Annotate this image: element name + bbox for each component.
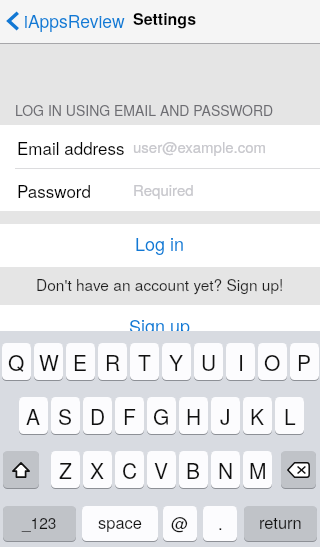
button[interactable]: Backspace: [281, 451, 316, 488]
button[interactable]: J: [211, 397, 240, 434]
staticText: T: [138, 347, 151, 377]
button[interactable]: return: [244, 506, 317, 541]
staticText: V: [154, 455, 169, 485]
staticText: Don't have an account yet? Sign up!: [36, 273, 284, 295]
staticText: J: [220, 401, 231, 431]
button[interactable]: G: [147, 397, 176, 434]
button[interactable]: Log in: [0, 224, 320, 267]
button[interactable]: H: [179, 397, 208, 434]
staticText: iAppsReview: [24, 8, 125, 33]
staticText: return: [259, 510, 302, 534]
button[interactable]: Email address: [0, 125, 320, 168]
button[interactable]: R: [98, 343, 127, 380]
staticText: Email address: [17, 135, 125, 159]
staticText: Log in: [135, 230, 185, 256]
staticText: C: [122, 455, 138, 485]
staticText: A: [26, 401, 41, 431]
button[interactable]: O: [258, 343, 287, 380]
button[interactable]: Q: [2, 343, 31, 380]
staticText: Z: [59, 455, 72, 485]
staticText: space: [98, 510, 143, 534]
staticText: M: [249, 455, 267, 485]
staticText: .: [218, 510, 223, 534]
staticText: S: [58, 401, 73, 431]
button[interactable]: space: [82, 506, 158, 541]
staticText: W: [39, 347, 59, 377]
staticText: I: [238, 347, 244, 377]
staticText: LOG IN USING EMAIL AND PASSWORD: [15, 100, 274, 120]
staticText: H: [186, 401, 202, 431]
button[interactable]: V: [147, 451, 176, 488]
button[interactable]: Z: [51, 451, 80, 488]
staticText: Password: [17, 178, 91, 202]
staticText: Required: [133, 179, 194, 200]
button[interactable]: U: [194, 343, 223, 380]
button[interactable]: T: [130, 343, 159, 380]
staticText: P: [297, 347, 312, 377]
staticText: @: [171, 510, 189, 534]
button[interactable]: L: [275, 397, 304, 434]
button[interactable]: Y: [162, 343, 191, 380]
staticText: N: [218, 455, 234, 485]
button[interactable]: Shift: [3, 451, 39, 488]
button[interactable]: W: [34, 343, 63, 380]
button[interactable]: F: [115, 397, 144, 434]
button[interactable]: D: [83, 397, 112, 434]
button[interactable]: Password: [0, 168, 320, 211]
button[interactable]: B: [179, 451, 208, 488]
button[interactable]: A: [19, 397, 48, 434]
staticText: B: [186, 455, 201, 485]
button[interactable]: K: [243, 397, 272, 434]
staticText: Settings: [133, 7, 197, 30]
button[interactable]: C: [115, 451, 144, 488]
staticText: Sign up: [129, 312, 191, 338]
staticText: G: [153, 401, 170, 431]
button[interactable]: _123: [3, 506, 76, 541]
button[interactable]: N: [211, 451, 240, 488]
button[interactable]: .: [203, 506, 237, 541]
staticText: K: [250, 401, 265, 431]
staticText: Y: [169, 347, 184, 377]
staticText: R: [105, 347, 121, 377]
staticText: U: [201, 347, 217, 377]
staticText: L: [284, 401, 296, 431]
button[interactable]: @: [163, 506, 197, 541]
staticText: F: [123, 401, 136, 431]
staticText: E: [73, 347, 88, 377]
button[interactable]: iAppsReview: [0, 8, 129, 33]
staticText: O: [264, 347, 281, 377]
button[interactable]: S: [51, 397, 80, 434]
staticText: _123: [22, 511, 57, 533]
button[interactable]: P: [290, 343, 319, 380]
button[interactable]: M: [243, 451, 272, 488]
staticText: D: [90, 401, 106, 431]
button[interactable]: X: [83, 451, 112, 488]
button[interactable]: E: [66, 343, 95, 380]
button[interactable]: I: [226, 343, 255, 380]
staticText: X: [90, 455, 105, 485]
button[interactable]: Sign up: [0, 305, 320, 337]
staticText: Q: [8, 347, 25, 377]
staticText: user@example.com: [133, 136, 267, 157]
